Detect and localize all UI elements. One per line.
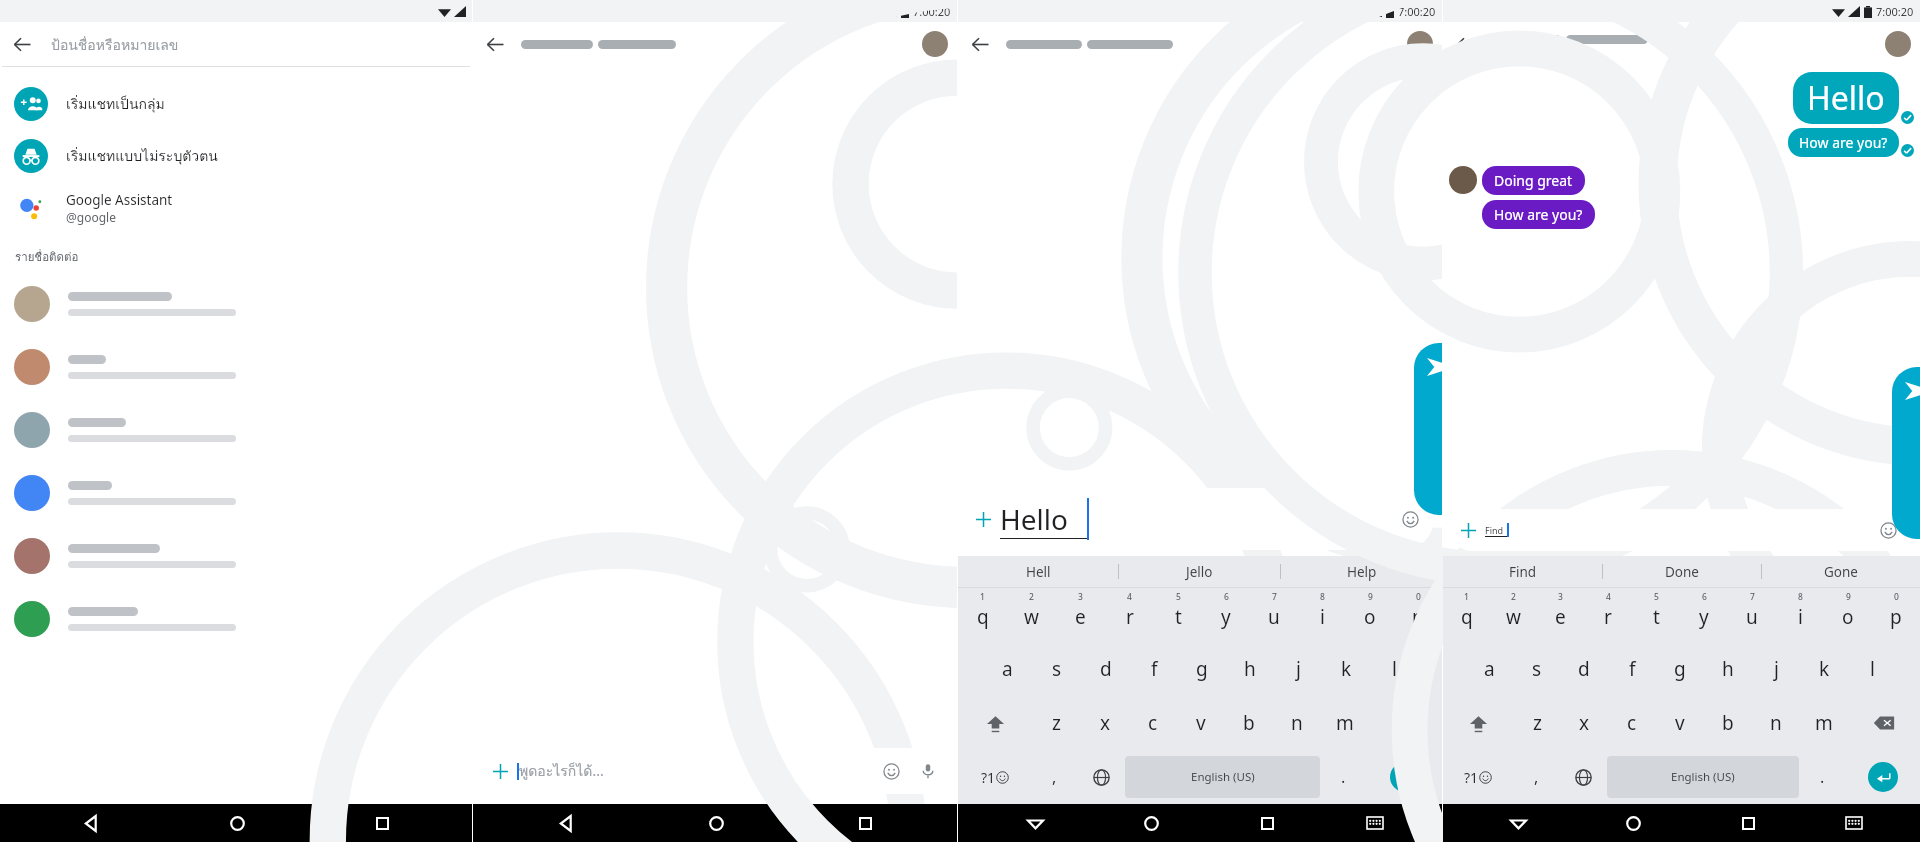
button[interactable]: Add attachment (483, 748, 947, 794)
button[interactable] (0, 587, 472, 650)
button[interactable]: Symbols (958, 750, 1031, 804)
button[interactable]: Recents (1250, 806, 1284, 840)
button[interactable]: m (1800, 696, 1848, 750)
button[interactable]: Shift (958, 696, 1032, 750)
button[interactable]: Profile photo (1407, 31, 1433, 57)
button[interactable]: x (1081, 696, 1129, 750)
button[interactable]: Add attachment (1451, 509, 1485, 551)
button[interactable]: Add attachment (966, 488, 1434, 550)
button[interactable]: c (1608, 696, 1656, 750)
button[interactable]: 7 (1250, 588, 1298, 642)
button[interactable]: Emoji (1870, 512, 1906, 548)
button[interactable]: s (1513, 642, 1560, 696)
button[interactable]: h (1226, 642, 1274, 696)
button[interactable]: Gone (1762, 556, 1920, 587)
button[interactable]: l (1370, 642, 1418, 696)
button[interactable]: เริ่มแชทแบบไม่ระบุตัวตน (0, 130, 472, 182)
button[interactable]: 4 (1105, 588, 1154, 642)
button[interactable]: 9 (1346, 588, 1394, 642)
button[interactable]: g (1178, 642, 1226, 696)
button[interactable]: 0 (1394, 588, 1442, 642)
button[interactable]: English (US) (1607, 756, 1799, 798)
button[interactable]: 7 (1728, 588, 1776, 642)
button[interactable]: 3 (1537, 588, 1584, 642)
button[interactable]: , (1031, 750, 1078, 804)
button[interactable]: Done (1603, 556, 1761, 587)
button[interactable]: 9 (1824, 588, 1872, 642)
button[interactable]: Help (1281, 556, 1442, 587)
button[interactable]: Back (473, 22, 517, 66)
button[interactable]: Emoji (873, 753, 909, 789)
button[interactable]: Find (1443, 556, 1602, 587)
button[interactable]: k (1322, 642, 1370, 696)
button[interactable]: Home (1134, 806, 1168, 840)
button[interactable]: Recents (1731, 806, 1765, 840)
button[interactable]: Doing great (1482, 166, 1585, 195)
button[interactable]: Jello (1119, 556, 1280, 587)
button[interactable]: g (1656, 642, 1704, 696)
button[interactable] (0, 272, 472, 335)
button[interactable]: 2 (1007, 588, 1056, 642)
button[interactable]: English (US) (1125, 756, 1320, 798)
button[interactable]: Profile photo (922, 31, 948, 57)
button[interactable]: Back (549, 806, 583, 840)
button[interactable]: v (1177, 696, 1225, 750)
button[interactable] (0, 461, 472, 524)
button[interactable]: s (1032, 642, 1081, 696)
button[interactable]: Enter (1390, 762, 1420, 792)
button[interactable]: Change language (1078, 750, 1125, 804)
button[interactable]: Send (1414, 343, 1468, 515)
button[interactable]: . (1320, 750, 1367, 804)
button[interactable]: Back (1443, 22, 1487, 66)
button[interactable]: Backspace (1369, 696, 1442, 750)
button[interactable]: Recents (848, 806, 882, 840)
button[interactable]: b (1704, 696, 1752, 750)
button[interactable]: . (1799, 750, 1846, 804)
button[interactable]: 1 (1443, 588, 1490, 642)
button[interactable]: 4 (1584, 588, 1632, 642)
button[interactable]: Home (1616, 806, 1650, 840)
button[interactable]: z (1514, 696, 1561, 750)
button[interactable]: Add attachment (966, 488, 1000, 550)
button[interactable]: Home (699, 806, 733, 840)
button[interactable]: Backspace (1848, 696, 1920, 750)
button[interactable]: Symbols (1443, 750, 1513, 804)
button[interactable]: j (1752, 642, 1800, 696)
button[interactable]: 6 (1680, 588, 1728, 642)
button[interactable]: How are you? (1788, 128, 1899, 157)
button[interactable]: n (1273, 696, 1321, 750)
button[interactable]: Switch keyboard (1360, 808, 1390, 838)
button[interactable]: n (1752, 696, 1800, 750)
button[interactable]: Emoji (1392, 501, 1428, 537)
button[interactable]: 6 (1202, 588, 1250, 642)
button[interactable]: Change language (1560, 750, 1607, 804)
button[interactable]: a (1466, 642, 1513, 696)
button[interactable]: Profile photo (1885, 31, 1911, 57)
button[interactable]: m (1321, 696, 1369, 750)
button[interactable]: Back (958, 22, 1002, 66)
button[interactable] (0, 335, 472, 398)
button[interactable]: Hell (958, 556, 1118, 587)
button[interactable] (0, 524, 472, 587)
button[interactable]: Send (1892, 367, 1920, 539)
button[interactable]: เริ่มแชทเป็นกลุ่ม (0, 78, 472, 130)
button[interactable]: Enter (1868, 762, 1898, 792)
button[interactable]: 1 (958, 588, 1007, 642)
button[interactable]: c (1129, 696, 1177, 750)
button[interactable]: 5 (1632, 588, 1680, 642)
button[interactable]: Back (0, 22, 45, 67)
button[interactable]: How are you? (1482, 200, 1595, 229)
button[interactable]: Add attachment (1451, 509, 1912, 551)
button[interactable]: 5 (1154, 588, 1202, 642)
button[interactable]: f (1608, 642, 1656, 696)
button[interactable]: j (1274, 642, 1322, 696)
button[interactable]: 2 (1490, 588, 1537, 642)
button[interactable]: d (1560, 642, 1608, 696)
button[interactable]: 3 (1056, 588, 1105, 642)
button[interactable]: Home (220, 806, 254, 840)
button[interactable]: Back (74, 806, 108, 840)
button[interactable]: Add attachment (483, 748, 517, 794)
button[interactable]: Recents (365, 806, 399, 840)
button[interactable]: z (1032, 696, 1081, 750)
button[interactable]: Switch keyboard (1839, 808, 1869, 838)
